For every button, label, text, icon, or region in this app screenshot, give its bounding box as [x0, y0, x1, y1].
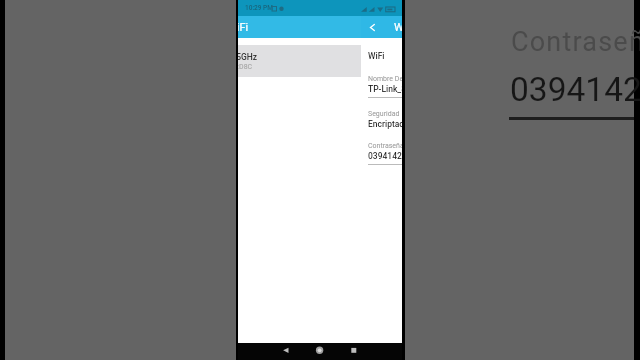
staticText: 38:F5:D8C	[238, 63, 253, 71]
button[interactable]: TP-Link_5GHz	[238, 45, 361, 77]
staticText: TP-Link_8	[368, 84, 402, 94]
button[interactable]: Home	[311, 343, 329, 360]
staticText: 10:29 PM	[245, 4, 273, 12]
staticText: Seguridad	[368, 110, 400, 118]
staticText: Encriptado	[368, 119, 402, 129]
staticText: 0394142	[368, 151, 402, 161]
staticText: WiFi	[368, 51, 385, 61]
button[interactable]: Back	[277, 343, 295, 360]
staticText: Contraseña	[368, 142, 402, 150]
staticText: WiFi	[394, 21, 402, 34]
staticText: 0394142	[510, 70, 640, 109]
button[interactable]: Back	[364, 16, 381, 38]
button[interactable]: Recent apps	[345, 343, 363, 360]
staticText: WiFi	[238, 21, 249, 34]
staticText: TP-Link_5GHz	[238, 52, 258, 62]
staticText: Nombre De Red	[368, 75, 402, 83]
staticText: Contraseña	[511, 26, 640, 58]
